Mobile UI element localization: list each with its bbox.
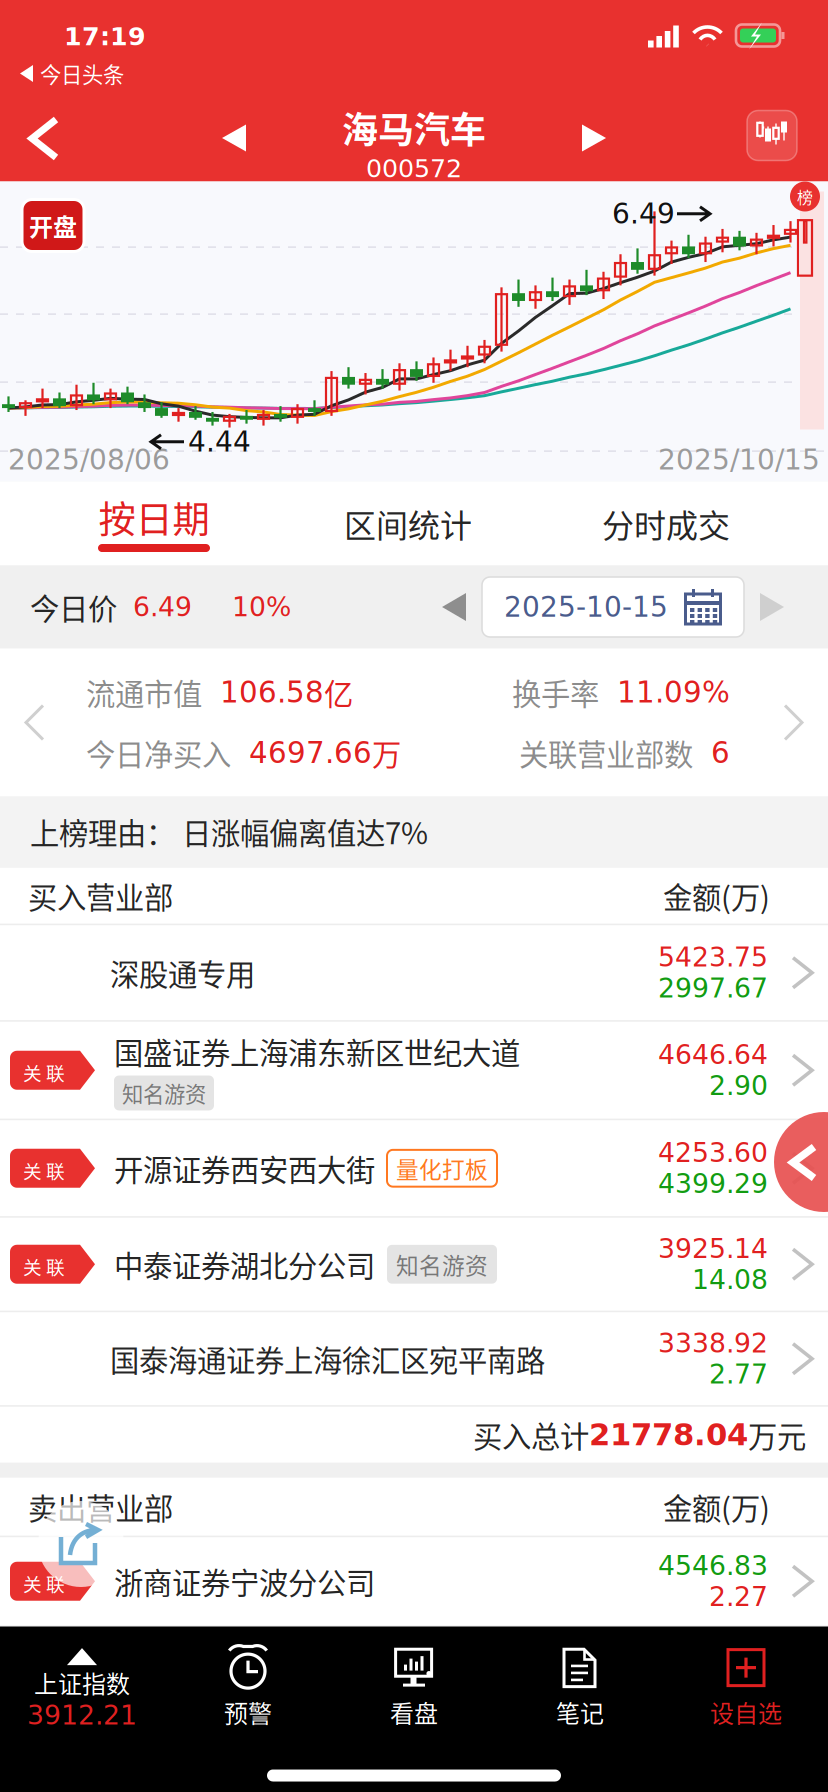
staticText: 深股通专用 xyxy=(110,951,255,994)
staticText: 国盛证券上海浦东新区世纪大道 xyxy=(114,1030,520,1073)
staticText: 看盘 xyxy=(390,1695,438,1729)
staticText: 4646.64 xyxy=(658,1039,768,1070)
staticText: 关 联 xyxy=(23,1253,65,1280)
button[interactable]: 上一只 xyxy=(202,104,266,171)
staticText: 分时成交 xyxy=(602,500,730,547)
staticText: 4399.29 xyxy=(658,1168,768,1199)
button[interactable]: 分享 xyxy=(38,1501,124,1587)
button[interactable]: 区间统计 xyxy=(286,481,530,565)
staticText: 开源证券西安西大街 xyxy=(114,1147,375,1189)
staticText: 2025/08/06 xyxy=(8,443,170,476)
staticText: 榜 xyxy=(797,185,813,208)
button[interactable]: 关 联 xyxy=(0,1120,828,1216)
staticText: 国泰海通证券上海徐汇区宛平南路 xyxy=(110,1337,545,1380)
staticText: 量化打板 xyxy=(396,1152,488,1185)
button[interactable]: 国泰海通证券上海徐汇区宛平南路 xyxy=(0,1312,828,1405)
staticText: 换手率 xyxy=(512,671,599,713)
staticText: 6 xyxy=(693,736,730,770)
staticText: 金额(万) xyxy=(663,1485,770,1528)
staticText: 知名游资 xyxy=(122,1077,206,1108)
staticText: 关 联 xyxy=(23,1157,65,1184)
staticText: 2025-10-15 xyxy=(504,591,668,623)
button[interactable]: 下一只 xyxy=(562,104,626,171)
staticText: 14.08 xyxy=(692,1264,768,1295)
staticText: 17:19 xyxy=(64,22,146,51)
button[interactable]: 返回 xyxy=(12,99,76,177)
button[interactable]: 分时成交 xyxy=(544,481,788,565)
staticText: 21778.04 xyxy=(589,1417,748,1453)
staticText: 上榜理由： 日涨幅偏离值达7% xyxy=(30,810,428,853)
staticText: 金额(万) xyxy=(663,874,770,917)
staticText: 开盘 xyxy=(29,208,77,243)
staticText: 按日期 xyxy=(98,490,209,544)
staticText: 6.49 xyxy=(612,197,675,230)
staticText: 6.49 xyxy=(117,591,192,622)
staticText: 关 联 xyxy=(23,1059,65,1086)
staticText: 106.58 xyxy=(202,675,324,709)
staticText: 流通市值 xyxy=(86,671,202,713)
staticText: 亿 xyxy=(324,671,353,713)
staticText: 区间统计 xyxy=(344,500,472,547)
staticText: 关联营业部数 xyxy=(519,731,693,774)
staticText: 4.44 xyxy=(188,425,251,458)
staticText: 关 联 xyxy=(23,1570,65,1597)
button[interactable]: 今日头条 xyxy=(0,57,136,89)
button[interactable]: 后一日 xyxy=(744,593,800,621)
button[interactable]: 设自选 xyxy=(663,1634,828,1742)
staticText: 11.09% xyxy=(599,675,730,709)
staticText: 3925.14 xyxy=(658,1233,768,1264)
staticText: 10% xyxy=(192,591,291,622)
staticText: 5423.75 xyxy=(658,942,768,973)
staticText: 万 xyxy=(372,731,401,774)
staticText: 海马汽车 xyxy=(342,101,486,154)
button[interactable]: 前一日 xyxy=(426,593,482,621)
staticText: 今日头条 xyxy=(40,58,124,89)
button[interactable]: 关 联 xyxy=(0,1022,828,1119)
staticText: 4546.83 xyxy=(658,1550,768,1581)
button[interactable]: 按日期 xyxy=(32,481,276,565)
button[interactable]: 收起 xyxy=(774,1112,828,1212)
staticText: 3912.21 xyxy=(27,1700,137,1731)
staticText: 3338.92 xyxy=(658,1328,768,1359)
button[interactable]: 笔记 xyxy=(497,1634,663,1742)
staticText: 上证指数 xyxy=(34,1665,130,1700)
staticText: 2.27 xyxy=(709,1581,768,1612)
staticText: 知名游资 xyxy=(396,1248,488,1281)
staticText: 2997.67 xyxy=(658,973,768,1004)
button[interactable]: 2025-10-15 xyxy=(482,577,744,637)
staticText: 4697.66 xyxy=(231,736,372,770)
staticText: 000572 xyxy=(366,154,462,183)
button[interactable]: 预警 xyxy=(165,1634,331,1742)
staticText: 笔记 xyxy=(556,1695,604,1729)
button[interactable]: 关 联 xyxy=(0,1218,828,1311)
staticText: 今日净买入 xyxy=(86,731,231,774)
staticText: 买入营业部 xyxy=(28,874,173,917)
staticText: 2025/10/15 xyxy=(658,443,820,476)
staticText: 浙商证券宁波分公司 xyxy=(114,1560,375,1602)
button[interactable]: 上证指数 xyxy=(0,1634,165,1742)
staticText: 4253.60 xyxy=(658,1137,768,1168)
staticText: 万元 xyxy=(748,1413,806,1456)
staticText: 今日价 xyxy=(30,586,117,628)
button[interactable]: 关 联 xyxy=(0,1537,828,1625)
staticText: 中泰证券湖北分公司 xyxy=(114,1243,375,1285)
button[interactable]: K线图 xyxy=(747,110,797,160)
staticText: 2.77 xyxy=(709,1359,768,1390)
button[interactable]: 深股通专用 xyxy=(0,925,828,1020)
staticText: 设自选 xyxy=(710,1695,782,1729)
staticText: 预警 xyxy=(224,1695,272,1729)
button[interactable]: 看盘 xyxy=(331,1634,497,1742)
staticText: 买入总计 xyxy=(473,1413,589,1456)
staticText: 2.90 xyxy=(709,1070,768,1101)
staticText: 卖出营业部 xyxy=(28,1485,173,1528)
